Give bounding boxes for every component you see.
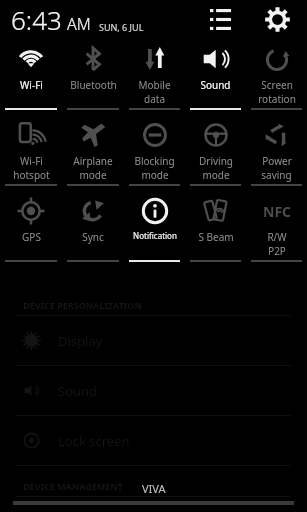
staticText: mode	[202, 168, 230, 182]
staticText: Sound	[200, 78, 231, 92]
staticText: AM	[67, 13, 91, 35]
staticText: mode	[141, 168, 169, 182]
button[interactable]: Mobile	[124, 38, 185, 114]
staticText: Sound	[58, 382, 98, 400]
button[interactable]: Driving	[185, 114, 246, 190]
staticText: Display	[58, 332, 103, 350]
button[interactable]: Wi-Fi	[0, 114, 62, 190]
staticText: saving	[261, 168, 292, 182]
staticText: data	[144, 92, 165, 106]
staticText: DEVICE PERSONALIZATION	[23, 299, 142, 311]
staticText: Bluetooth	[70, 78, 117, 92]
staticText: Lock screen	[58, 432, 130, 450]
button[interactable]: Screen	[246, 38, 307, 114]
staticText: NFC	[263, 202, 292, 221]
staticText: hotspot	[13, 168, 50, 182]
button[interactable]: NFC	[246, 190, 307, 266]
button[interactable]: GPS	[0, 190, 62, 266]
staticText: DEVICE MANAGEMENT	[23, 480, 123, 492]
button[interactable]: Settings	[258, 0, 296, 38]
staticText: VIVA	[142, 481, 166, 496]
staticText: Mobile	[138, 78, 171, 92]
staticText: Driving	[199, 154, 233, 168]
staticText: P2P	[268, 244, 286, 258]
staticText: Screen	[261, 78, 293, 92]
staticText: Wi-Fi	[20, 154, 43, 168]
staticText: Notification	[133, 230, 177, 241]
staticText: S Beam	[198, 230, 234, 244]
button[interactable]: Notification	[124, 190, 185, 266]
staticText: mode	[79, 168, 107, 182]
button[interactable]: Display	[0, 316, 307, 366]
staticText: 6:43	[11, 2, 62, 37]
staticText: SUN, 6 JUL	[99, 21, 144, 33]
button[interactable]: Bluetooth	[62, 38, 124, 114]
staticText: Wi-Fi	[20, 78, 43, 92]
staticText: Airplane	[73, 154, 113, 168]
button[interactable]: Power	[246, 114, 307, 190]
button[interactable]: Sync	[62, 190, 124, 266]
staticText: Sync	[82, 230, 104, 244]
staticText: Power	[262, 154, 292, 168]
staticText: Blocking	[134, 154, 175, 168]
button[interactable]: Wi-Fi	[0, 38, 62, 114]
staticText: rotation	[258, 92, 296, 106]
button[interactable]: Edit quick settings	[203, 2, 237, 36]
button[interactable]: S Beam	[185, 190, 246, 266]
button[interactable]: Airplane	[62, 114, 124, 190]
button[interactable]: Blocking	[124, 114, 185, 190]
staticText: GPS	[22, 230, 41, 244]
button[interactable]: Sound	[185, 38, 246, 114]
staticText: R/W	[267, 230, 287, 244]
